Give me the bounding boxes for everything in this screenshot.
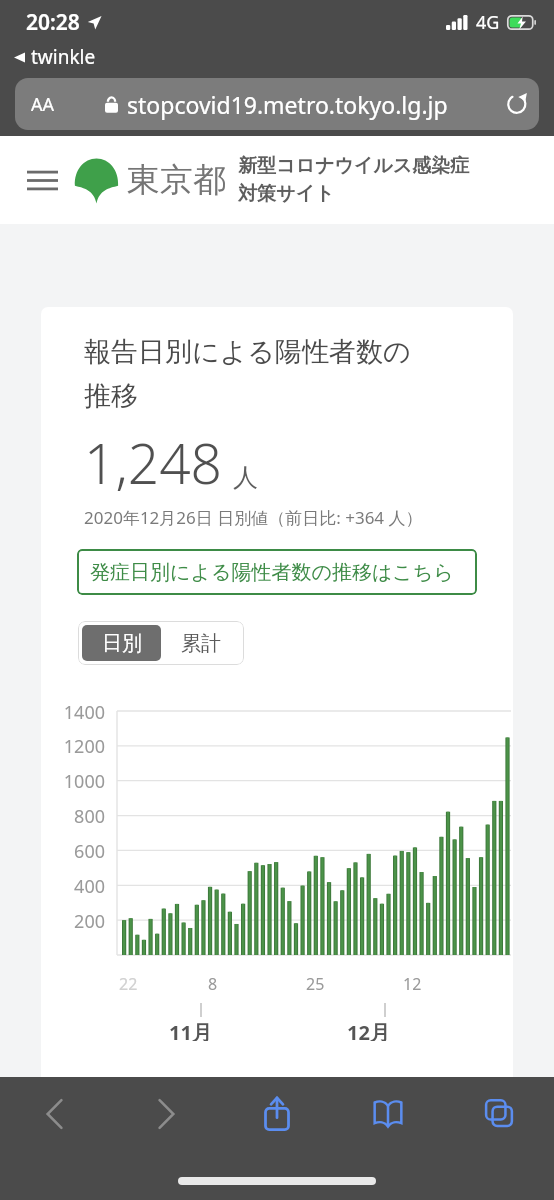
staticText: 対策サイト	[238, 182, 335, 206]
staticText: 報告日別による陽性者数の	[84, 335, 411, 369]
staticText: 東京都	[127, 159, 226, 201]
button[interactable]: Back	[0, 1077, 110, 1151]
staticText: 12月	[347, 1019, 390, 1041]
staticText: 新型コロナウイルス感染症	[238, 154, 470, 178]
staticText: 1400	[41, 700, 105, 725]
button[interactable]: Bookmarks	[332, 1077, 443, 1151]
staticText: 400	[41, 874, 105, 899]
staticText: 4G	[476, 10, 500, 35]
staticText: 日別	[102, 631, 142, 656]
staticText: 200	[41, 909, 105, 934]
staticText: 人	[233, 462, 258, 493]
button[interactable]: Forward	[110, 1077, 221, 1151]
button[interactable]: Share	[221, 1077, 332, 1151]
staticText: 11月	[169, 1019, 212, 1041]
button[interactable]: Tabs	[443, 1077, 554, 1151]
button[interactable]: Menu	[24, 162, 60, 198]
staticText: 累計	[181, 631, 221, 656]
staticText: 1,248	[84, 425, 222, 500]
staticText: 1200	[41, 734, 105, 759]
button[interactable]: 累計	[161, 625, 240, 661]
staticText: twinkle	[31, 44, 96, 70]
staticText: 2020年12月26日 日別値（前日比: +364 人）	[84, 506, 423, 529]
button[interactable]: 発症日別による陽性者数の推移はこちら	[77, 549, 477, 595]
staticText: 20:28	[26, 8, 80, 37]
staticText: 12	[403, 973, 422, 995]
staticText: 22	[119, 973, 138, 995]
staticText: 800	[41, 804, 105, 829]
button[interactable]: Address bar	[15, 78, 539, 130]
staticText: 推移	[84, 379, 138, 413]
staticText: 8	[208, 973, 218, 995]
staticText: stopcovid19.metro.tokyo.lg.jp	[127, 89, 448, 120]
staticText: 1000	[41, 769, 105, 794]
staticText: 600	[41, 839, 105, 864]
button[interactable]: 日別	[82, 625, 161, 661]
staticText: AA	[31, 92, 55, 117]
button[interactable]: Reload	[499, 86, 535, 122]
staticText: 発症日別による陽性者数の推移はこちら	[90, 560, 454, 585]
staticText: 25	[306, 973, 325, 995]
